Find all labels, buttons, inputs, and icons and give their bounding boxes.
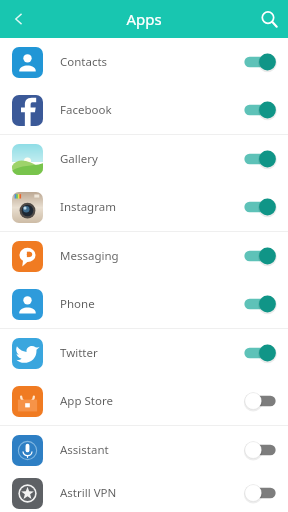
staticText: Contacts [60,54,108,70]
button[interactable]: Phone [0,280,288,328]
button[interactable]: Instagram [0,183,288,231]
staticText: Instagram [60,199,116,215]
staticText: Phone [60,296,95,312]
button[interactable]: Toggle [243,149,277,169]
button[interactable]: Twitter [0,329,288,377]
button[interactable]: Toggle [243,391,277,411]
button[interactable]: Toggle [243,52,277,72]
button[interactable]: Toggle [243,343,277,363]
staticText: Astrill VPN [60,485,117,501]
staticText: Assistant [60,442,109,458]
staticText: Messaging [60,248,119,264]
staticText: Facebook [60,102,112,118]
staticText: Gallery [60,151,98,167]
button[interactable]: Toggle [243,197,277,217]
button[interactable]: Toggle [243,294,277,314]
staticText: App Store [60,393,113,409]
button[interactable]: Assistant [0,426,288,474]
staticText: Twitter [60,345,98,361]
button[interactable]: Messaging [0,232,288,280]
button[interactable]: Facebook [0,86,288,134]
button[interactable]: Toggle [243,440,277,460]
button[interactable]: Toggle [243,246,277,266]
button[interactable]: Back [0,0,38,38]
button[interactable]: Contacts [0,38,288,86]
button[interactable]: Toggle [243,100,277,120]
button[interactable]: Astrill VPN [0,474,288,512]
staticText: Apps [126,9,162,29]
button[interactable]: Gallery [0,135,288,183]
button[interactable]: Search [250,0,288,38]
button[interactable]: App Store [0,377,288,425]
button[interactable]: Toggle [243,483,277,503]
